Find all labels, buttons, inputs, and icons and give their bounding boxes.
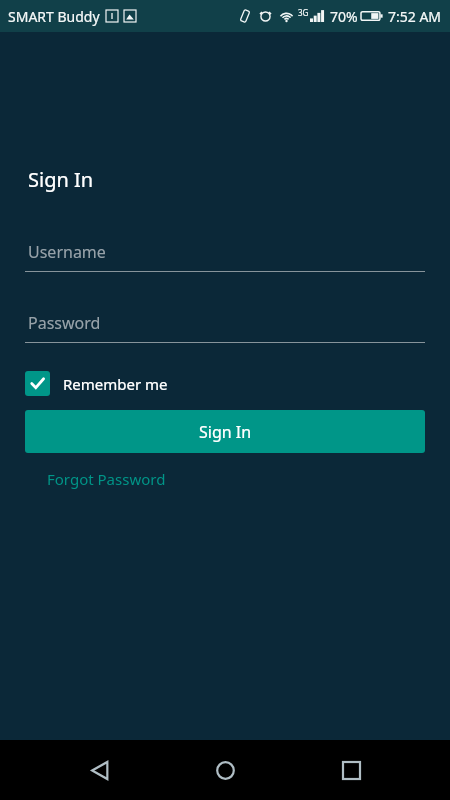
button[interactable]: Forgot Password: [47, 469, 166, 489]
button[interactable]: Recent apps: [325, 744, 377, 796]
button[interactable]: Password: [25, 312, 425, 343]
staticText: Forgot Password: [47, 469, 166, 489]
staticText: Sign In: [199, 421, 252, 443]
button[interactable]: Remember me: [25, 371, 168, 396]
button[interactable]: Sign In: [25, 410, 425, 453]
staticText: Password: [28, 312, 101, 334]
button[interactable]: Home: [199, 744, 251, 796]
staticText: Remember me: [63, 374, 168, 394]
staticText: Sign In: [28, 166, 94, 193]
button[interactable]: Back: [74, 744, 126, 796]
staticText: 7:52 AM: [388, 7, 442, 26]
button[interactable]: Username: [25, 241, 425, 272]
staticText: 70%: [330, 7, 358, 26]
staticText: Username: [28, 241, 106, 263]
staticText: SMART Buddy: [8, 7, 100, 26]
staticText: 3G: [298, 7, 309, 18]
